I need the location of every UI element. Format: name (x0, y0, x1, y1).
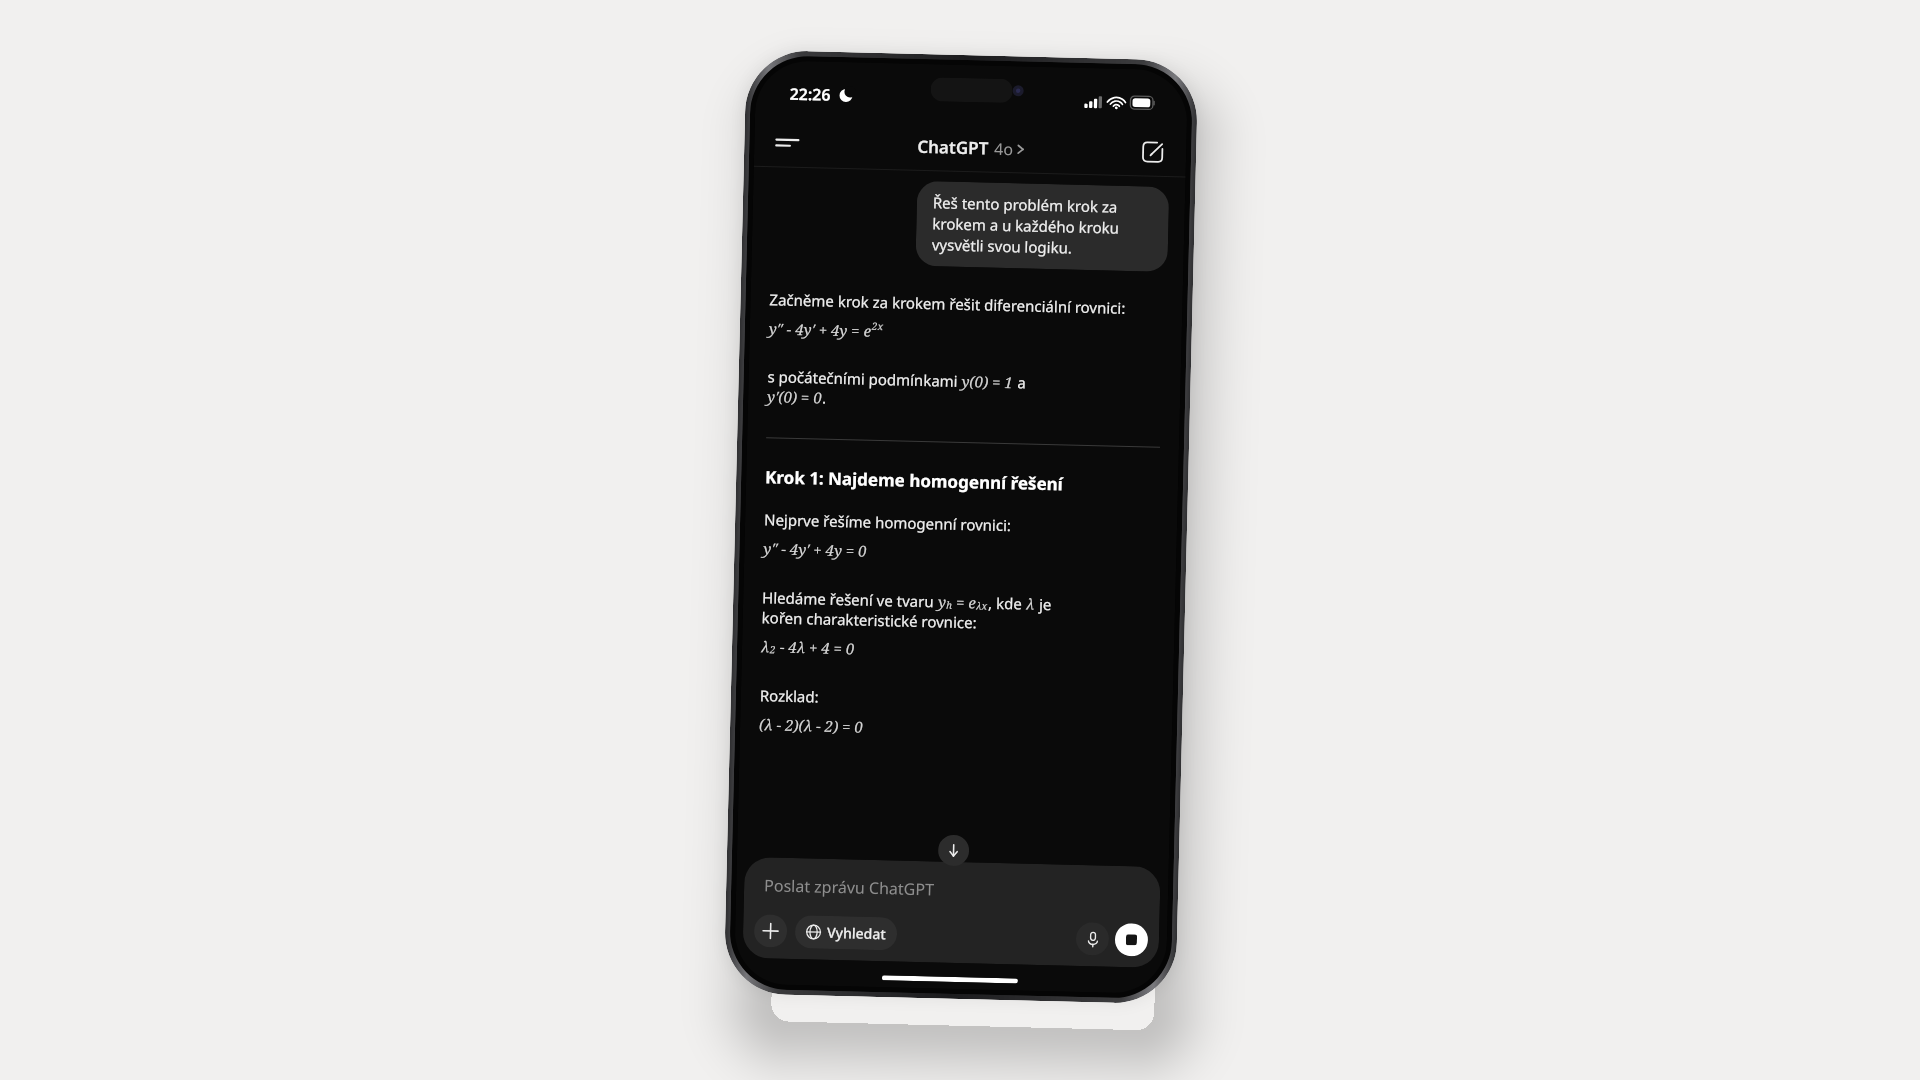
staticText: a (1013, 372, 1027, 392)
button[interactable]: New chat (1132, 131, 1173, 172)
staticText: y″ − 4y′ + 4y = e (769, 318, 872, 341)
staticText: s počátečními podmínkami (767, 366, 962, 391)
staticText: y (938, 591, 946, 612)
staticText: kořen charakteristické rovnice: (761, 607, 977, 632)
staticText: λ (761, 636, 770, 656)
button[interactable]: Add attachment (754, 914, 787, 948)
button[interactable]: Voice input (1076, 922, 1109, 956)
staticText: λ (1026, 594, 1035, 614)
staticText: y′(0) = 0 (767, 386, 822, 407)
staticText: − 4λ + 4 = 0 (776, 636, 855, 658)
staticText: Hledáme řešení ve tvaru (762, 587, 938, 611)
staticText: Začněme krok za krokem řešit diferenciál… (769, 289, 1126, 318)
staticText: = e (952, 592, 976, 612)
staticText: 2 (770, 642, 776, 656)
staticText: 2x (872, 319, 884, 333)
staticText: Rozklad: (760, 685, 819, 706)
button[interactable]: Řeš tento problém krok za krokem a u kaž… (915, 181, 1169, 272)
staticText: Poslat zprávu ChatGPT (764, 874, 934, 900)
button[interactable]: Scroll to bottom (938, 834, 969, 866)
staticText: . (822, 388, 827, 408)
button[interactable]: ChatGPT (911, 131, 1031, 165)
staticText: Krok 1: Najdeme homogenní řešení (765, 465, 1063, 495)
staticText: je (1035, 594, 1052, 614)
staticText: Vyhledat (827, 923, 886, 943)
staticText: ChatGPT (917, 135, 989, 160)
staticText: 4o (994, 138, 1013, 160)
staticText: Nejprve řešíme homogenní rovnici: (764, 509, 1011, 535)
staticText: y″ − 4y′ + 4y = 0 (763, 538, 868, 561)
button[interactable]: Stop generating (1115, 923, 1148, 957)
button[interactable]: Vyhledat (795, 915, 897, 951)
staticText: 22:26 (789, 83, 832, 106)
staticText: y(0) = 1 (961, 371, 1014, 392)
staticText: h (946, 598, 952, 612)
button[interactable]: Open sidebar (767, 122, 808, 163)
staticText: λx (976, 598, 988, 613)
button[interactable]: Poslat zprávu ChatGPT (743, 857, 1161, 924)
staticText: , kde (988, 593, 1026, 614)
staticText: (λ − 2)(λ − 2) = 0 (759, 714, 863, 737)
staticText: Řeš tento problém krok za krokem a u kaž… (932, 192, 1153, 261)
